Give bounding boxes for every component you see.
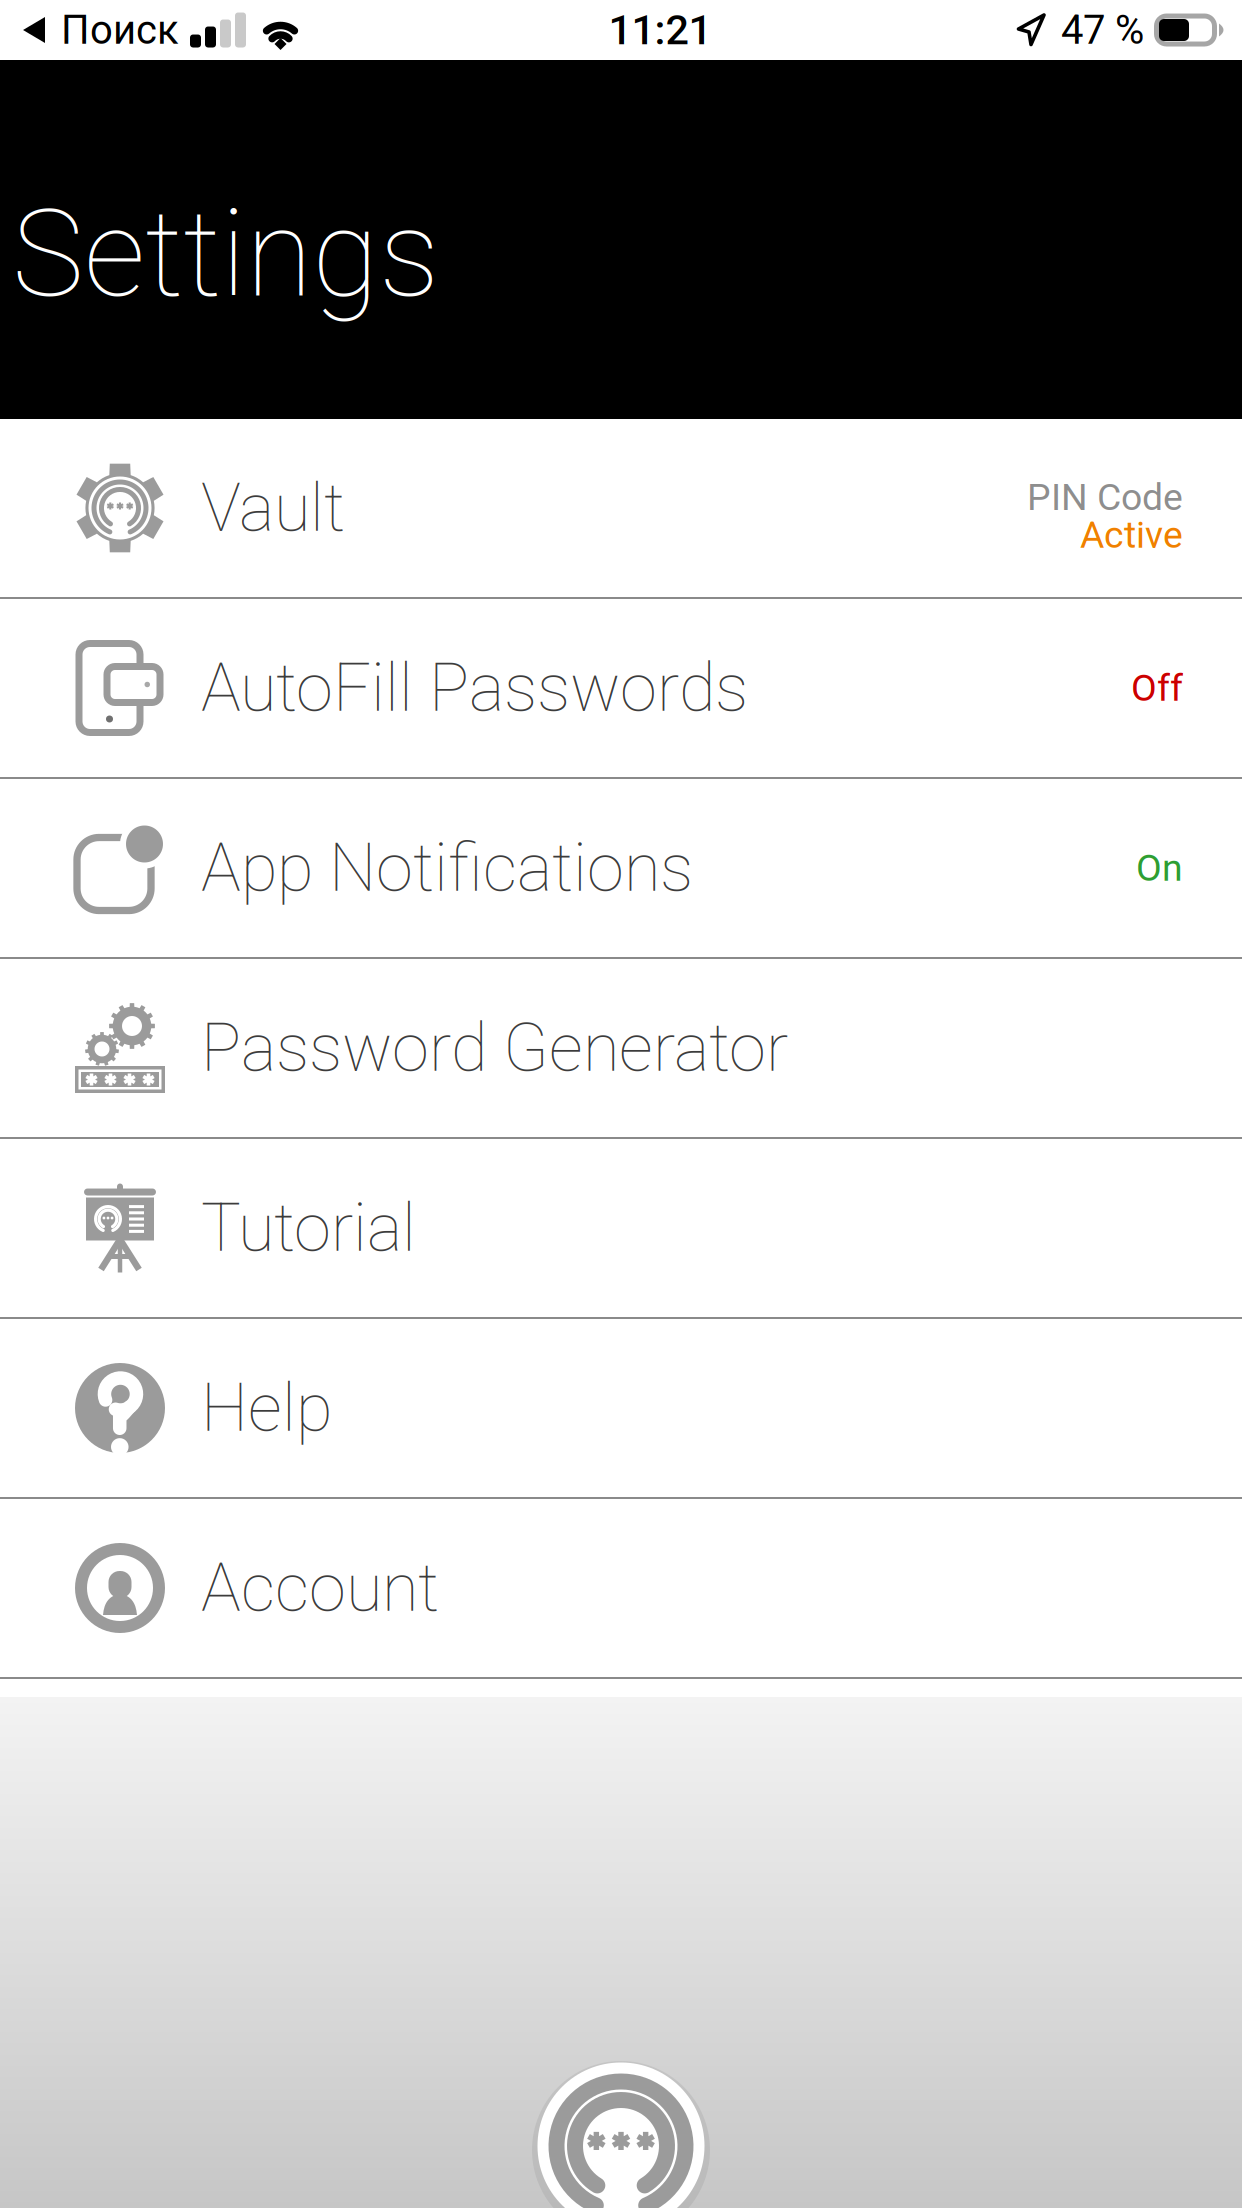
button[interactable]: AutoFill Passwords xyxy=(0,599,1242,779)
button[interactable]: Tutorial xyxy=(0,1139,1242,1319)
staticText: PIN Code xyxy=(1027,475,1183,519)
button[interactable]: Password Generator xyxy=(0,959,1242,1139)
button[interactable]: Account xyxy=(0,1499,1242,1679)
staticText: Active xyxy=(1080,513,1183,557)
staticText: Password Generator xyxy=(201,1009,788,1087)
button[interactable]: Help xyxy=(0,1319,1242,1499)
staticText: 11:21 xyxy=(608,6,711,54)
button[interactable]: App Notifications xyxy=(0,779,1242,959)
staticText: On xyxy=(1136,846,1183,890)
button[interactable]: Vault xyxy=(0,419,1242,599)
staticText: Off xyxy=(1131,666,1183,710)
staticText: Settings xyxy=(12,183,439,325)
staticText: Account xyxy=(201,1549,439,1627)
staticText: Vault xyxy=(201,469,345,547)
staticText: Tutorial xyxy=(201,1189,416,1267)
staticText: 47 % xyxy=(1061,7,1144,53)
staticText: Help xyxy=(201,1369,332,1447)
staticText: AutoFill Passwords xyxy=(201,649,748,727)
staticText: App Notifications xyxy=(201,829,693,907)
staticText: Поиск xyxy=(61,7,179,53)
